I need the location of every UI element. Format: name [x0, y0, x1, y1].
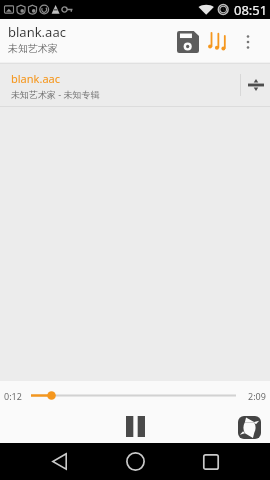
- button[interactable]: More options: [234, 24, 262, 60]
- staticText: 未知艺术家 - 未知专辑: [11, 88, 100, 100]
- staticText: 未知艺术家: [8, 42, 58, 55]
- button[interactable]: Save playlist: [175, 24, 200, 60]
- button[interactable]: Reorder: [241, 64, 270, 106]
- staticText: blank.aac: [11, 71, 61, 86]
- staticText: 08:51: [234, 1, 268, 19]
- button[interactable]: Pause: [116, 410, 154, 443]
- staticText: blank.aac: [8, 23, 66, 41]
- staticText: 0:12: [4, 390, 22, 402]
- button[interactable]: Repeat: [234, 412, 264, 442]
- button[interactable]: blank.aac: [0, 64, 270, 107]
- button[interactable]: Seek bar: [0, 381, 270, 410]
- button[interactable]: Recent apps: [186, 443, 236, 480]
- staticText: 2:09: [248, 390, 266, 402]
- button[interactable]: Back: [34, 443, 84, 480]
- button[interactable]: Home: [110, 443, 160, 480]
- button[interactable]: Now playing: [200, 24, 234, 60]
